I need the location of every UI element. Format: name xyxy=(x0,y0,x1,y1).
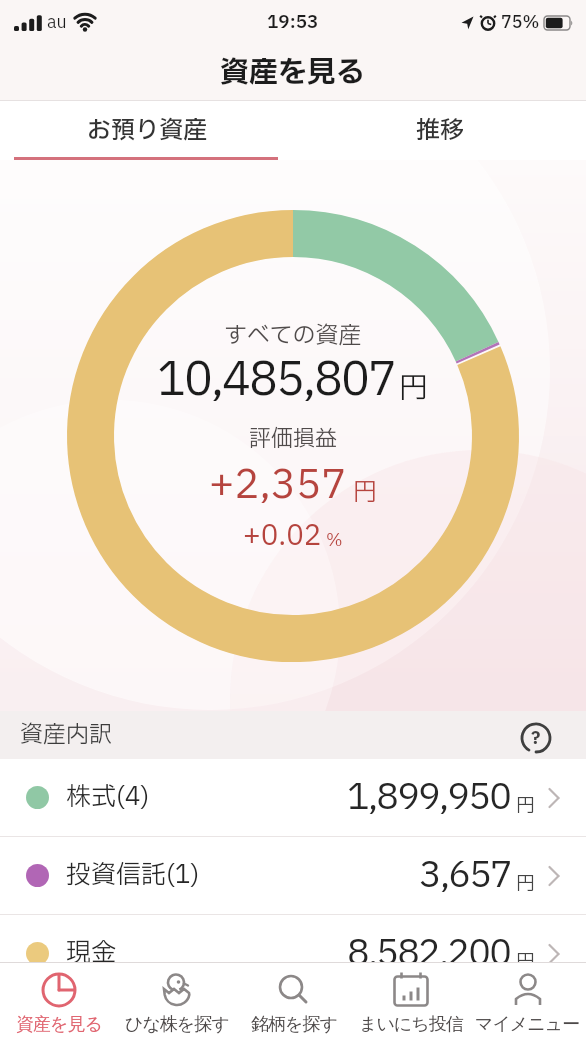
button[interactable]: 銘柄を探す xyxy=(235,963,352,1042)
staticText: 円 xyxy=(516,870,536,898)
button[interactable]: 株式(4) xyxy=(0,759,586,837)
button[interactable]: ひな株を探す xyxy=(118,963,235,1042)
staticText: 評価損益 xyxy=(249,423,338,456)
staticText: 10,485,807 xyxy=(157,346,395,415)
staticText: 投資信託(1) xyxy=(66,857,200,894)
button[interactable]: 投資信託(1) xyxy=(0,837,586,915)
button[interactable]: 推移 xyxy=(293,101,586,160)
staticText: マイメニュー xyxy=(475,1013,580,1036)
staticText: +0.02 xyxy=(243,515,322,557)
button[interactable]: ? xyxy=(520,722,552,754)
staticText: 19:53 xyxy=(267,9,319,36)
staticText: すべての資産 xyxy=(224,319,362,353)
staticText: 3,657 xyxy=(419,849,511,903)
button[interactable]: お預り資産 xyxy=(0,101,293,160)
staticText: 円 xyxy=(516,948,536,976)
staticText: ひな株を探す xyxy=(125,1013,229,1036)
staticText: 株式(4) xyxy=(66,779,150,816)
staticText: +2,357 xyxy=(209,456,347,516)
button[interactable]: 資産を見る xyxy=(0,963,118,1042)
staticText: 8,582,200 xyxy=(347,927,511,981)
staticText: ? xyxy=(531,725,541,752)
staticText: 円 xyxy=(516,792,536,820)
staticText: 推移 xyxy=(416,113,464,149)
staticText: 資産を見る xyxy=(220,51,366,94)
staticText: まいにち投信 xyxy=(359,1013,463,1036)
staticText: 75% xyxy=(501,10,540,35)
button[interactable]: マイメニュー xyxy=(469,963,586,1042)
staticText: 銘柄を探す xyxy=(251,1013,337,1036)
staticText: 資産内訳 xyxy=(20,718,112,752)
staticText: 1,899,950 xyxy=(347,771,511,825)
staticText: % xyxy=(326,528,343,553)
button[interactable]: 現金 xyxy=(0,915,586,993)
staticText: 現金 xyxy=(66,935,117,972)
staticText: お預り資産 xyxy=(87,113,207,149)
staticText: 円 xyxy=(399,367,429,410)
staticText: 資産を見る xyxy=(16,1013,102,1036)
staticText: au xyxy=(47,10,67,35)
button[interactable]: まいにち投信 xyxy=(352,963,469,1042)
staticText: 円 xyxy=(353,475,377,511)
